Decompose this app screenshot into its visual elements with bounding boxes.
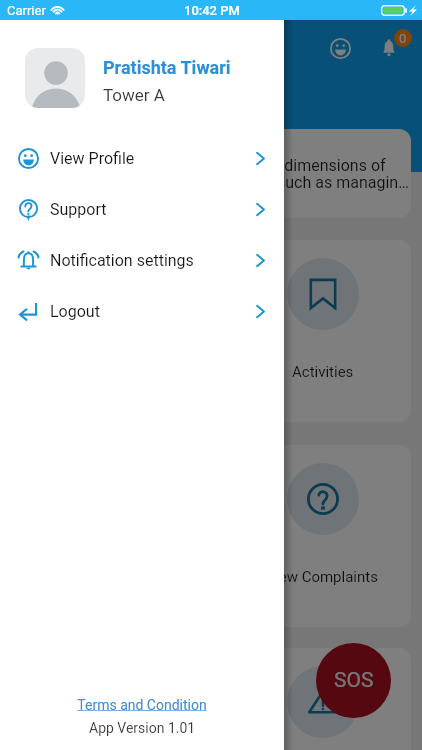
button[interactable]: SOS	[316, 643, 391, 718]
button[interactable]: Feedback	[322, 30, 358, 66]
button[interactable]: View Profile	[0, 133, 284, 184]
button[interactable]: New Complaints	[235, 445, 411, 627]
button[interactable]: Terms and Condition	[77, 697, 207, 713]
staticText: Tower A	[103, 85, 165, 105]
button[interactable]: Support	[0, 184, 284, 235]
staticText: 0	[399, 31, 407, 46]
button[interactable]: Emergency	[235, 648, 411, 750]
staticText: View Profile	[50, 149, 135, 168]
button[interactable]: Activities	[11, 240, 187, 422]
button[interactable]: Notification settings	[0, 235, 284, 286]
button[interactable]: Activities	[235, 240, 411, 422]
staticText: Carrier	[7, 3, 46, 18]
staticText: Notification settings	[50, 251, 194, 270]
staticText: Support	[50, 200, 107, 219]
staticText: Logout	[50, 302, 100, 321]
button[interactable]: Logout	[0, 286, 284, 337]
button[interactable]: Emergency	[11, 648, 187, 750]
staticText: SOS	[334, 668, 374, 693]
staticText: App Version 1.01	[89, 720, 196, 736]
staticText: Activities	[292, 363, 354, 381]
staticText: Pratishta Tiwari	[103, 57, 231, 78]
staticText: Society management involves many dimensi…	[25, 156, 409, 192]
staticText: New Complaints	[268, 568, 378, 586]
staticText: 10:42 PM	[184, 3, 240, 18]
button[interactable]: Notifications	[372, 28, 412, 68]
